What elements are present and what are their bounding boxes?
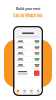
staticText: Stock Watchlist bbox=[13, 13, 43, 18]
button[interactable]: Tab bbox=[14, 90, 21, 93]
button[interactable]: Tab bbox=[35, 90, 42, 93]
button[interactable]: Tab bbox=[21, 90, 28, 93]
staticText: Build your next bbox=[16, 6, 40, 11]
button[interactable]: Tab bbox=[28, 90, 35, 93]
